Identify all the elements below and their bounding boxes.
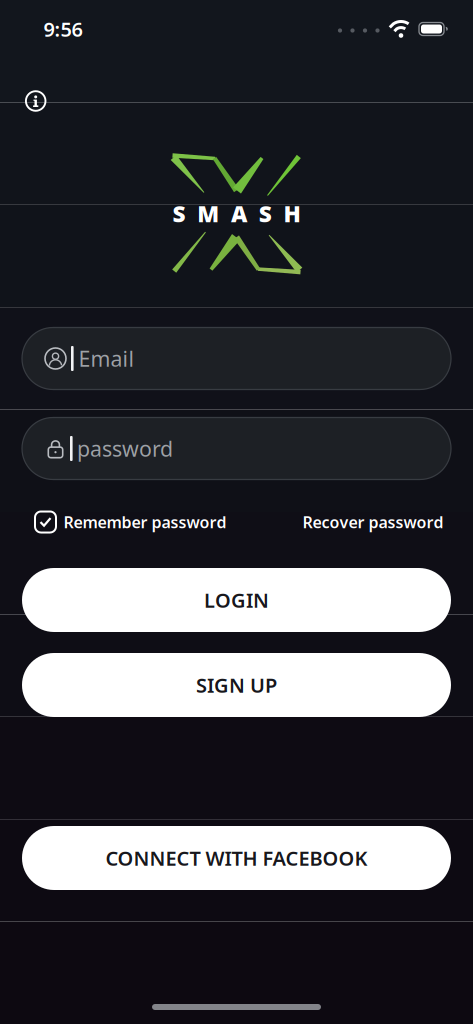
- button[interactable]: CONNECT WITH FACEBOOK: [22, 826, 451, 890]
- staticText: S: [173, 198, 186, 228]
- staticText: S: [259, 198, 272, 228]
- staticText: Email: [79, 344, 135, 373]
- button[interactable]: SIGN UP: [22, 653, 451, 717]
- button[interactable]: Email: [22, 327, 451, 389]
- staticText: M: [197, 198, 219, 228]
- staticText: A: [231, 198, 247, 228]
- staticText: CONNECT WITH FACEBOOK: [105, 845, 367, 871]
- button[interactable]: Recover password: [302, 511, 443, 533]
- staticText: Recover password: [302, 511, 443, 533]
- button[interactable]: password: [22, 417, 451, 479]
- staticText: LOGIN: [204, 587, 269, 613]
- staticText: Remember password: [63, 511, 226, 533]
- staticText: 9:56: [43, 16, 82, 42]
- button[interactable]: LOGIN: [22, 568, 451, 632]
- staticText: SIGN UP: [196, 672, 277, 698]
- button[interactable]: Remember password: [34, 511, 226, 533]
- button[interactable]: [25, 90, 47, 112]
- staticText: H: [283, 198, 300, 228]
- staticText: password: [77, 434, 173, 463]
